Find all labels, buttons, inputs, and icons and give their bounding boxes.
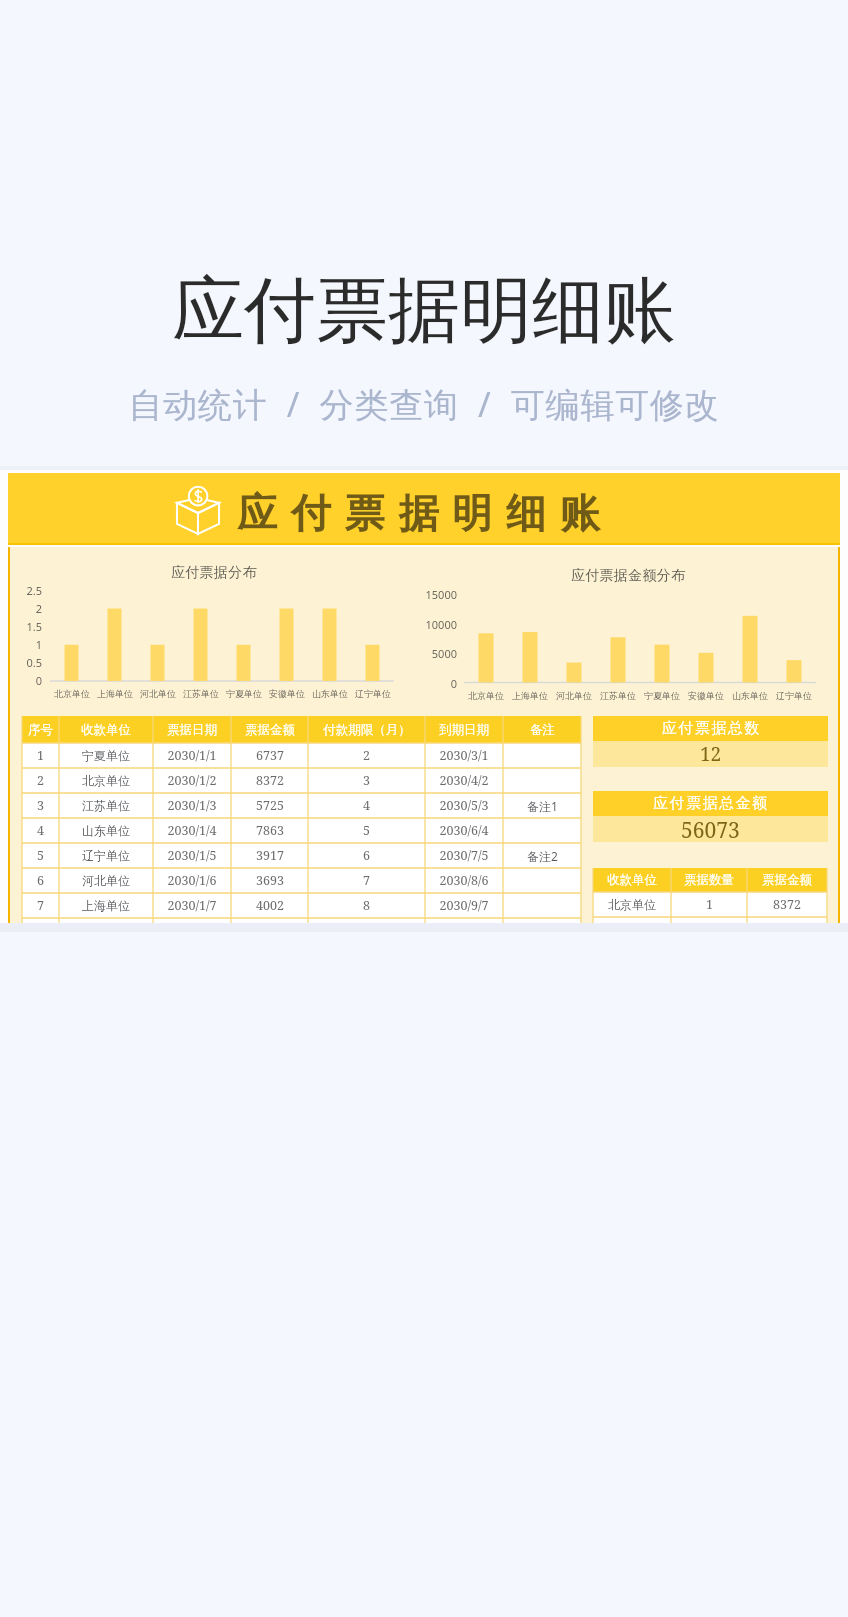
- staticText: 4002: [256, 897, 284, 914]
- staticText: 5725: [256, 797, 284, 814]
- button[interactable]: [22, 893, 581, 918]
- staticText: 7: [363, 872, 370, 889]
- staticText: 12: [700, 741, 722, 767]
- staticText: 2030/1/3: [167, 797, 217, 814]
- staticText: 2030/6/4: [439, 822, 489, 839]
- staticText: 0.5: [26, 655, 42, 670]
- staticText: 8372: [256, 772, 284, 789]
- staticText: 7: [37, 897, 44, 914]
- staticText: 安徽单位: [688, 690, 724, 701]
- staticText: 安徽单位: [269, 688, 305, 699]
- staticText: 到期日期: [439, 722, 489, 738]
- staticText: 3: [37, 797, 44, 814]
- staticText: 河北单位: [82, 873, 130, 888]
- staticText: 3: [363, 772, 370, 789]
- staticText: 5: [37, 847, 44, 864]
- button[interactable]: [22, 868, 581, 893]
- staticText: 票据金额: [245, 722, 295, 738]
- staticText: 2: [37, 772, 44, 789]
- staticText: 付款期限（月）: [323, 722, 411, 738]
- staticText: 票据日期: [167, 722, 217, 738]
- button[interactable]: 应付票据: [8, 473, 840, 545]
- staticText: 2030/1/1: [167, 747, 217, 764]
- staticText: 7863: [256, 822, 284, 839]
- staticText: 3917: [256, 847, 284, 864]
- staticText: 应付票据总数: [661, 719, 760, 738]
- staticText: 1: [35, 637, 42, 652]
- staticText: 宁夏单位: [226, 688, 262, 699]
- staticText: 1: [37, 747, 44, 764]
- staticText: 2030/1/5: [167, 847, 217, 864]
- staticText: 5000: [431, 646, 457, 661]
- button[interactable]: 应付票据总数: [593, 716, 828, 741]
- staticText: 2030/8/6: [439, 872, 489, 889]
- staticText: 1.5: [26, 619, 42, 634]
- button[interactable]: [22, 743, 581, 768]
- staticText: 宁夏单位: [644, 690, 680, 701]
- staticText: 4: [37, 822, 44, 839]
- button[interactable]: [593, 868, 827, 892]
- staticText: 2030/7/5: [439, 847, 489, 864]
- staticText: 江苏单位: [600, 690, 636, 701]
- button[interactable]: [22, 843, 581, 868]
- staticText: 北京单位: [608, 897, 656, 912]
- staticText: 票据数量: [684, 872, 734, 888]
- staticText: 2030/5/3: [439, 797, 489, 814]
- button[interactable]: [593, 892, 827, 923]
- staticText: 上海单位: [97, 688, 133, 699]
- staticText: 6: [363, 847, 370, 864]
- staticText: 0: [35, 673, 42, 688]
- staticText: 2030/1/4: [167, 822, 217, 839]
- button[interactable]: [22, 818, 581, 843]
- staticText: 1: [706, 896, 713, 913]
- staticText: 2: [363, 747, 370, 764]
- staticText: 北京单位: [468, 690, 504, 701]
- staticText: 6: [37, 872, 44, 889]
- staticText: 4: [363, 797, 370, 814]
- staticText: 备注2: [527, 848, 558, 864]
- staticText: 8372: [773, 896, 801, 913]
- staticText: 江苏单位: [183, 688, 219, 699]
- staticText: 2030/3/1: [439, 747, 489, 764]
- staticText: 上海单位: [512, 690, 548, 701]
- staticText: 备注1: [527, 798, 558, 814]
- staticText: 2.5: [26, 583, 42, 598]
- staticText: 北京单位: [54, 688, 90, 699]
- staticText: 收款单位: [607, 872, 657, 888]
- staticText: 应付票据总金额: [653, 794, 769, 813]
- staticText: 8: [363, 897, 370, 914]
- staticText: 6737: [256, 747, 284, 764]
- staticText: 2: [35, 601, 42, 616]
- button[interactable]: [22, 716, 581, 743]
- staticText: 2030/9/7: [439, 897, 489, 914]
- staticText: 宁夏单位: [82, 748, 130, 763]
- staticText: 江苏单位: [82, 798, 130, 813]
- button[interactable]: 应付票据总金额: [593, 791, 828, 816]
- staticText: 应付票据分布: [171, 564, 257, 582]
- button[interactable]: [22, 793, 581, 818]
- staticText: 上海单位: [82, 898, 130, 913]
- staticText: 应付票据明细账: [172, 266, 676, 357]
- staticText: 辽宁单位: [355, 688, 391, 699]
- staticText: 票据金额: [762, 872, 812, 888]
- staticText: 辽宁单位: [82, 848, 130, 863]
- staticText: 2030/1/2: [167, 772, 217, 789]
- staticText: 15000: [425, 587, 457, 602]
- staticText: 辽宁单位: [776, 690, 812, 701]
- staticText: 应付票据金额分布: [571, 567, 686, 585]
- staticText: 河北单位: [140, 688, 176, 699]
- staticText: 山东单位: [82, 823, 130, 838]
- staticText: 山东单位: [732, 690, 768, 701]
- staticText: 应付票据明细账: [237, 488, 614, 538]
- staticText: 5: [363, 822, 370, 839]
- staticText: 河北单位: [556, 690, 592, 701]
- other: 应付票据: [176, 486, 220, 534]
- staticText: 3693: [256, 872, 284, 889]
- staticText: 10000: [425, 617, 457, 632]
- button[interactable]: [22, 768, 581, 793]
- staticText: 56073: [681, 816, 740, 842]
- staticText: 0: [450, 676, 457, 691]
- staticText: 收款单位: [81, 722, 131, 738]
- staticText: 自动统计 / 分类查询 / 可编辑可修改: [128, 381, 720, 427]
- staticText: 2030/4/2: [439, 772, 489, 789]
